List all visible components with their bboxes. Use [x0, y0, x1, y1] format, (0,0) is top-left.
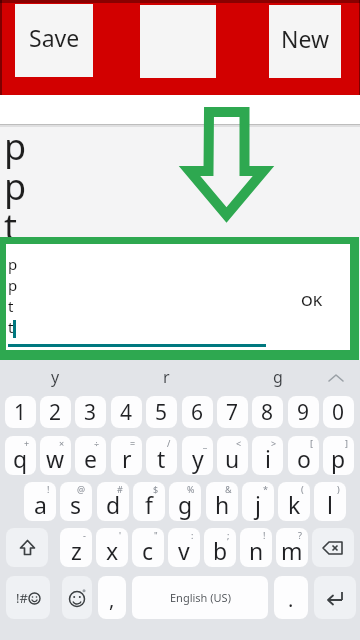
button[interactable]: y [182, 436, 213, 475]
staticText: r [163, 366, 170, 388]
staticText: . [288, 586, 294, 613]
button[interactable]: i [252, 436, 283, 475]
button[interactable]: 3 [75, 396, 106, 428]
button[interactable]: 6 [182, 396, 213, 428]
staticText: ; [227, 529, 230, 541]
button[interactable]: u [217, 436, 248, 475]
staticText: o [297, 443, 311, 474]
button[interactable]: OK [297, 290, 327, 310]
staticText: 8 [261, 398, 274, 427]
staticText: ÷ [94, 437, 100, 449]
button[interactable]: q [5, 436, 36, 475]
staticText: y [51, 366, 60, 388]
button[interactable]: g [169, 482, 201, 521]
button[interactable]: v [168, 528, 200, 567]
button[interactable]: n [240, 528, 272, 567]
staticText: x [106, 535, 119, 566]
staticText: i [265, 443, 271, 474]
button[interactable]: r [151, 366, 181, 388]
staticText: v [178, 535, 190, 566]
staticText: b [213, 535, 228, 566]
button[interactable]: 8 [252, 396, 283, 428]
button[interactable]: r [111, 436, 142, 475]
staticText: e [84, 443, 97, 474]
staticText: 5 [155, 398, 168, 427]
button[interactable]: !# [6, 576, 50, 619]
staticText: p p t t [8, 254, 18, 338]
button[interactable]: x [96, 528, 128, 567]
button[interactable]: 7 [217, 396, 248, 428]
button[interactable]: l [314, 482, 346, 521]
staticText: s [70, 489, 82, 520]
button[interactable]: b [204, 528, 236, 567]
staticText: [ [310, 437, 313, 449]
button[interactable]: s [60, 482, 92, 521]
button[interactable]: 1 [5, 396, 36, 428]
staticText: n [249, 535, 264, 566]
button[interactable]: , [98, 576, 126, 619]
staticText: ) [337, 483, 340, 495]
staticText: & [225, 483, 232, 495]
staticText: _ [203, 437, 207, 449]
button[interactable]: c [132, 528, 164, 567]
button[interactable]: Save [15, 4, 93, 77]
staticText: : [191, 529, 194, 541]
button[interactable]: New [269, 5, 341, 78]
button[interactable]: 2 [40, 396, 71, 428]
button[interactable]: h [206, 482, 238, 521]
staticText: a [34, 489, 47, 520]
staticText: + [24, 437, 30, 449]
staticText: New [281, 23, 330, 54]
button[interactable]: k [278, 482, 310, 521]
staticText: g [273, 366, 283, 388]
staticText: k [288, 489, 301, 520]
button[interactable] [328, 374, 344, 382]
button[interactable] [6, 528, 48, 567]
button[interactable]: 5 [146, 396, 177, 428]
button[interactable]: j [242, 482, 274, 521]
staticText: @ [77, 483, 86, 495]
staticText: m [281, 535, 303, 566]
staticText: 1 [14, 398, 27, 427]
button[interactable]: 4 [111, 396, 142, 428]
staticText: ' [119, 529, 122, 541]
button[interactable]: w [40, 436, 71, 475]
staticText: 6 [191, 398, 204, 427]
staticText: * [263, 483, 268, 495]
button[interactable]: . [274, 576, 308, 619]
button[interactable]: o [288, 436, 319, 475]
button[interactable]: d [97, 482, 129, 521]
button[interactable]: 0 [323, 396, 354, 428]
staticText: l [327, 489, 333, 520]
staticText: × [59, 437, 65, 449]
staticText: p p t [4, 122, 27, 251]
staticText: z [71, 535, 82, 566]
staticText: u [225, 443, 240, 474]
button[interactable]: f [133, 482, 165, 521]
button[interactable]: a [24, 482, 56, 521]
staticText: f [145, 489, 153, 520]
button[interactable] [62, 576, 92, 619]
button[interactable]: t [146, 436, 177, 475]
staticText: $ [153, 483, 159, 495]
staticText: !# [16, 589, 28, 607]
staticText: c [142, 535, 154, 566]
staticText: , [109, 586, 115, 613]
staticText: y [192, 443, 204, 474]
button[interactable] [314, 576, 356, 619]
staticText: g [178, 489, 193, 520]
button[interactable]: 9 [288, 396, 319, 428]
button[interactable]: English (US) [132, 576, 268, 619]
button[interactable]: z [60, 528, 92, 567]
staticText: 7 [226, 398, 239, 427]
button[interactable]: y [40, 366, 70, 388]
button[interactable] [312, 528, 354, 567]
button[interactable]: m [276, 528, 308, 567]
staticText: / [167, 437, 171, 449]
button[interactable]: g [263, 366, 293, 388]
button[interactable]: e [75, 436, 106, 475]
staticText: w [46, 443, 65, 474]
button[interactable]: p [323, 436, 354, 475]
staticText: 3 [84, 398, 97, 427]
